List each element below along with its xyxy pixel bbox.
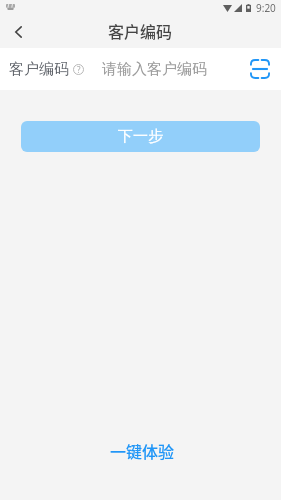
staticText: 9:20	[256, 1, 276, 15]
staticText: 请输入客户编码	[102, 60, 207, 79]
staticText: 下一步	[118, 127, 163, 146]
button[interactable]: Help	[70, 61, 87, 78]
staticText: 客户编码	[9, 60, 69, 79]
staticText: ?	[77, 64, 81, 75]
button[interactable]: 下一步	[21, 121, 260, 152]
button[interactable]: 一键体验	[98, 433, 187, 468]
staticText: 一键体验	[110, 439, 175, 462]
staticText: 客户编码	[108, 19, 173, 42]
button[interactable]: Scan barcode	[241, 50, 279, 88]
button[interactable]: Back	[0, 16, 36, 48]
